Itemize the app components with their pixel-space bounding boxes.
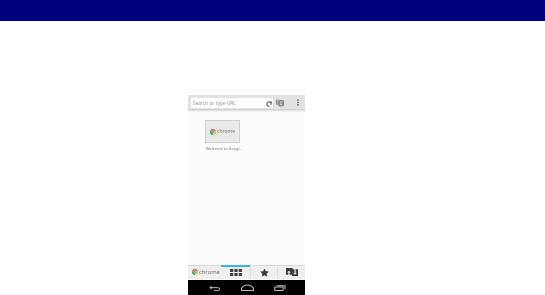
button[interactable]: Home	[236, 281, 258, 294]
staticText: Search or type URL	[193, 100, 236, 107]
button[interactable]: Recent apps	[269, 281, 291, 294]
button[interactable]: chrome	[205, 120, 240, 143]
staticText: chrome	[217, 128, 235, 135]
staticText: Welcome to Googl...	[206, 146, 243, 151]
staticText: chrome	[199, 268, 220, 276]
button[interactable]: More options	[290, 95, 305, 109]
button[interactable]: Chrome home	[188, 265, 221, 279]
button[interactable]: Bookmarks	[251, 265, 277, 279]
button[interactable]: Search or type URL	[191, 98, 273, 108]
button[interactable]: Back	[203, 281, 225, 294]
button[interactable]: Other devices	[278, 265, 305, 279]
button[interactable]: Most visited	[221, 265, 250, 279]
button[interactable]: Reload	[265, 100, 272, 107]
button[interactable]: Open tabs	[274, 98, 286, 107]
